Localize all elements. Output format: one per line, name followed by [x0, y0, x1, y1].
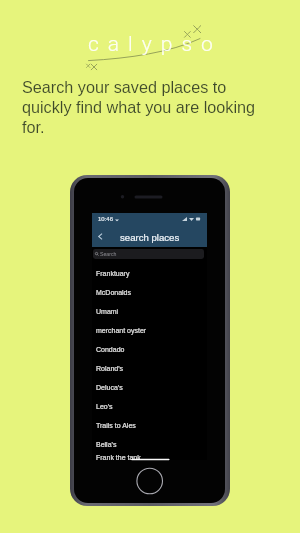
button[interactable]: Search	[93, 249, 204, 259]
staticText: merchant oyster	[96, 327, 147, 335]
button[interactable]: Roland's	[92, 359, 207, 378]
staticText: McDonalds	[96, 289, 132, 297]
staticText: Frank the tank	[96, 454, 141, 460]
button[interactable]: Bella's	[92, 435, 207, 454]
staticText: Condado	[96, 346, 125, 354]
staticText: Franktuary	[96, 270, 130, 278]
staticText: Deluca's	[96, 384, 123, 392]
staticText: Umami	[96, 308, 119, 316]
staticText: Search	[100, 251, 117, 257]
staticText: Trails to Ales	[96, 422, 136, 430]
button[interactable]: Back	[94, 230, 107, 243]
button[interactable]: Frank the tank	[92, 454, 207, 460]
button[interactable]: Deluca's	[92, 378, 207, 397]
staticText: calypso	[88, 32, 222, 57]
button[interactable]: Condado	[92, 340, 207, 359]
staticText: 10:46	[98, 216, 114, 223]
button[interactable]: Trails to Ales	[92, 416, 207, 435]
button[interactable]: Umami	[92, 302, 207, 321]
staticText: Search your saved places to quickly find…	[22, 78, 274, 136]
staticText: Roland's	[96, 365, 124, 373]
button[interactable]: McDonalds	[92, 283, 207, 302]
button[interactable]: merchant oyster	[92, 321, 207, 340]
staticText: Bella's	[96, 441, 117, 449]
button[interactable]: Franktuary	[92, 264, 207, 283]
staticText: Leo's	[96, 403, 113, 411]
button[interactable]: Leo's	[92, 397, 207, 416]
staticText: search places	[120, 232, 180, 243]
